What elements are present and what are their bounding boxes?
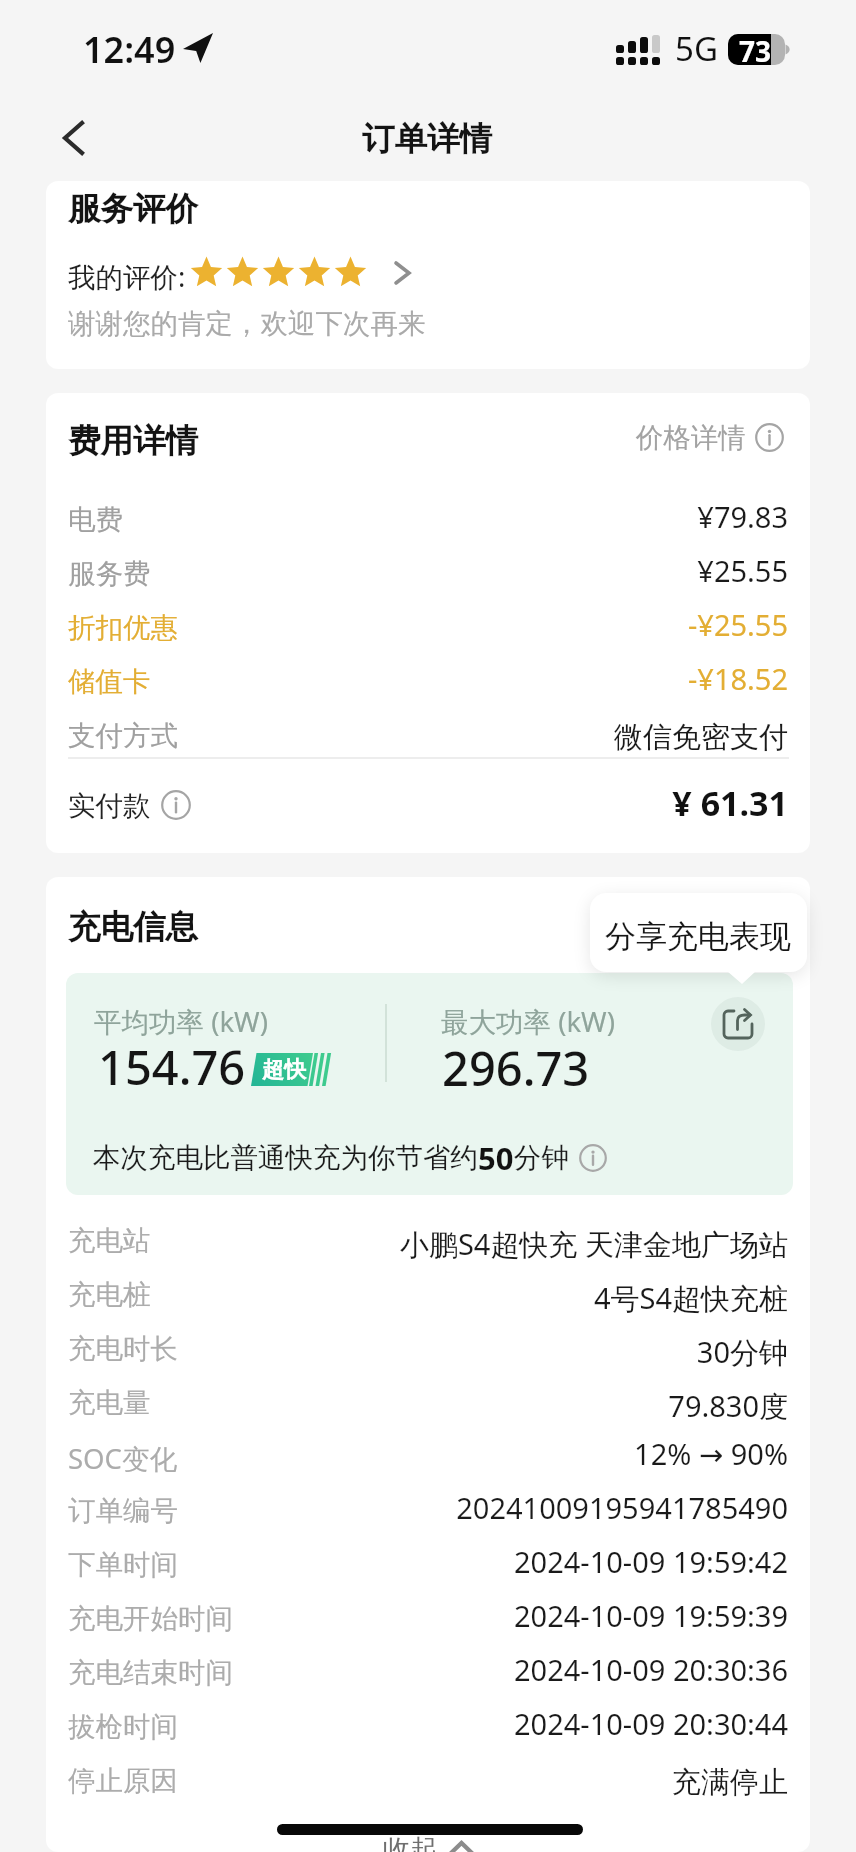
staticText: ¥25.55: [0, 551, 788, 590]
button[interactable]: Share charging performance: [711, 997, 765, 1051]
staticText: 微信免密支付: [0, 719, 788, 756]
staticText: 充电桩: [68, 1278, 151, 1313]
button[interactable]: [630, 416, 788, 462]
staticText: 分钟: [514, 1141, 569, 1176]
staticText: 4号S4超快充桩: [0, 1278, 788, 1318]
button[interactable]: 实付款说明: [161, 790, 191, 820]
staticText: 收起: [383, 1833, 438, 1852]
staticText: 支付方式: [68, 719, 178, 754]
staticText: 平均功率 (kW): [94, 1003, 268, 1041]
staticText: 充电量: [68, 1386, 151, 1421]
staticText: 50: [478, 1137, 514, 1179]
button[interactable]: [46, 1321, 810, 1375]
staticText: 12% → 90%: [0, 1434, 788, 1473]
staticText: 充电站: [68, 1224, 151, 1259]
button[interactable]: [46, 1429, 810, 1483]
staticText: 5G: [675, 26, 718, 71]
staticText: 服务评价: [68, 189, 198, 230]
button[interactable]: [46, 1483, 810, 1537]
button[interactable]: [46, 1267, 810, 1321]
staticText: 充电信息: [68, 907, 198, 948]
staticText: 20241009195941785490: [0, 1488, 788, 1527]
staticText: 12:49: [83, 25, 176, 74]
button[interactable]: [46, 1753, 810, 1807]
staticText: ¥ 61.31: [0, 780, 788, 826]
button[interactable]: [46, 654, 810, 708]
staticText: 2024-10-09 20:30:36: [0, 1650, 788, 1689]
staticText: 充电开始时间: [68, 1602, 233, 1637]
button[interactable]: [46, 1213, 810, 1267]
button[interactable]: [46, 546, 810, 600]
staticText: 296.73: [442, 1036, 590, 1100]
button[interactable]: [46, 1591, 810, 1645]
button[interactable]: [46, 1699, 810, 1753]
staticText: 服务费: [68, 557, 151, 592]
staticText: 2024-10-09 19:59:42: [0, 1542, 788, 1581]
staticText: 充满停止: [0, 1764, 788, 1801]
button[interactable]: [46, 708, 810, 762]
staticText: SOC变化: [68, 1440, 177, 1478]
button[interactable]: [46, 600, 810, 654]
staticText: 订单编号: [68, 1494, 178, 1529]
staticText: 我的评价:: [68, 258, 186, 296]
button[interactable]: [46, 492, 810, 546]
staticText: 79.830度: [0, 1386, 788, 1426]
staticText: 下单时间: [68, 1548, 178, 1583]
staticText: 小鹏S4超快充 天津金地广场站: [0, 1224, 788, 1264]
staticText: 充电结束时间: [68, 1656, 233, 1691]
staticText: 储值卡: [68, 665, 151, 700]
staticText: 30分钟: [0, 1332, 788, 1372]
staticText: 最大功率 (kW): [441, 1003, 615, 1041]
staticText: 拔枪时间: [68, 1710, 178, 1745]
staticText: 费用详情: [68, 421, 198, 462]
button[interactable]: 充电节省说明: [579, 1144, 607, 1172]
staticText: 充电时长: [68, 1332, 178, 1367]
staticText: 73: [739, 32, 772, 63]
staticText: -¥18.52: [0, 659, 788, 698]
staticText: 订单详情: [362, 119, 492, 160]
staticText: 停止原因: [68, 1764, 178, 1799]
staticText: 谢谢您的肯定，欢迎下次再来: [68, 307, 426, 342]
button[interactable]: Back: [37, 100, 110, 176]
staticText: 超快: [262, 1056, 306, 1084]
staticText: 电费: [68, 503, 123, 538]
staticText: -¥25.55: [0, 605, 788, 644]
staticText: 154.76: [98, 1035, 246, 1099]
staticText: 实付款: [68, 789, 151, 824]
button[interactable]: 收起: [383, 1833, 475, 1852]
staticText: ¥79.83: [0, 497, 788, 536]
button[interactable]: 我的评价 5 stars: [70, 250, 415, 298]
staticText: 本次充电比普通快充为你节省约: [93, 1141, 478, 1176]
button[interactable]: [46, 1375, 810, 1429]
staticText: 2024-10-09 19:59:39: [0, 1596, 788, 1635]
staticText: 2024-10-09 20:30:44: [0, 1704, 788, 1743]
staticText: 分享充电表现: [605, 917, 791, 956]
button[interactable]: [46, 1645, 810, 1699]
button[interactable]: [46, 1537, 810, 1591]
staticText: 价格详情: [636, 421, 746, 456]
staticText: 折扣优惠: [68, 611, 178, 646]
button[interactable]: Share charging performance: [590, 893, 807, 973]
